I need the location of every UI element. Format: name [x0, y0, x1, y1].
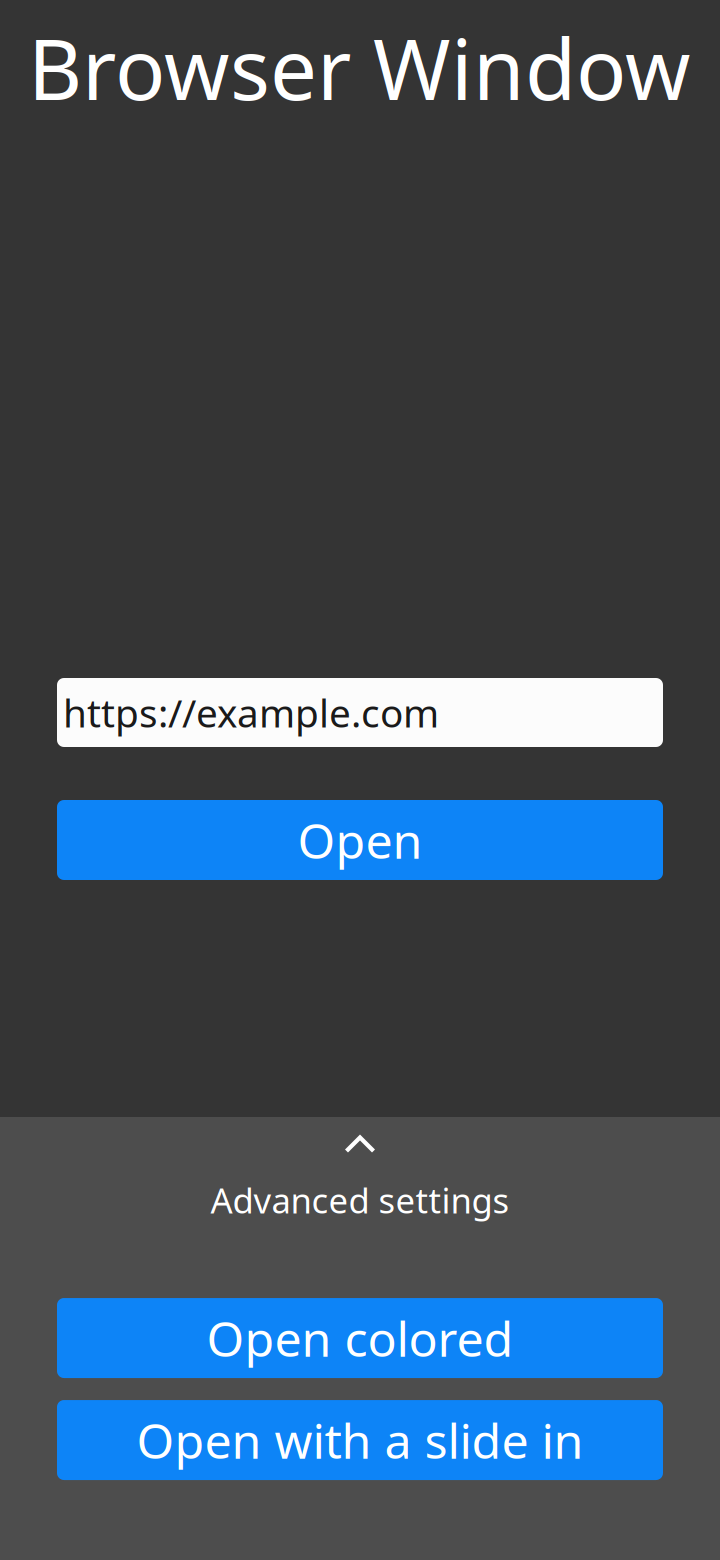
button[interactable]: Open colored: [57, 1298, 663, 1378]
staticText: https://example.com: [63, 687, 439, 738]
button[interactable]: Open: [57, 800, 663, 880]
button[interactable]: Advanced settings: [0, 1117, 720, 1223]
staticText: Open colored: [206, 1305, 513, 1371]
staticText: Advanced settings: [210, 1177, 509, 1223]
staticText: Browser Window: [28, 11, 691, 124]
staticText: Open with a slide in: [136, 1407, 583, 1473]
staticText: Open: [297, 807, 422, 873]
button[interactable]: https://example.com: [57, 678, 663, 747]
button[interactable]: Open with a slide in: [57, 1400, 663, 1480]
